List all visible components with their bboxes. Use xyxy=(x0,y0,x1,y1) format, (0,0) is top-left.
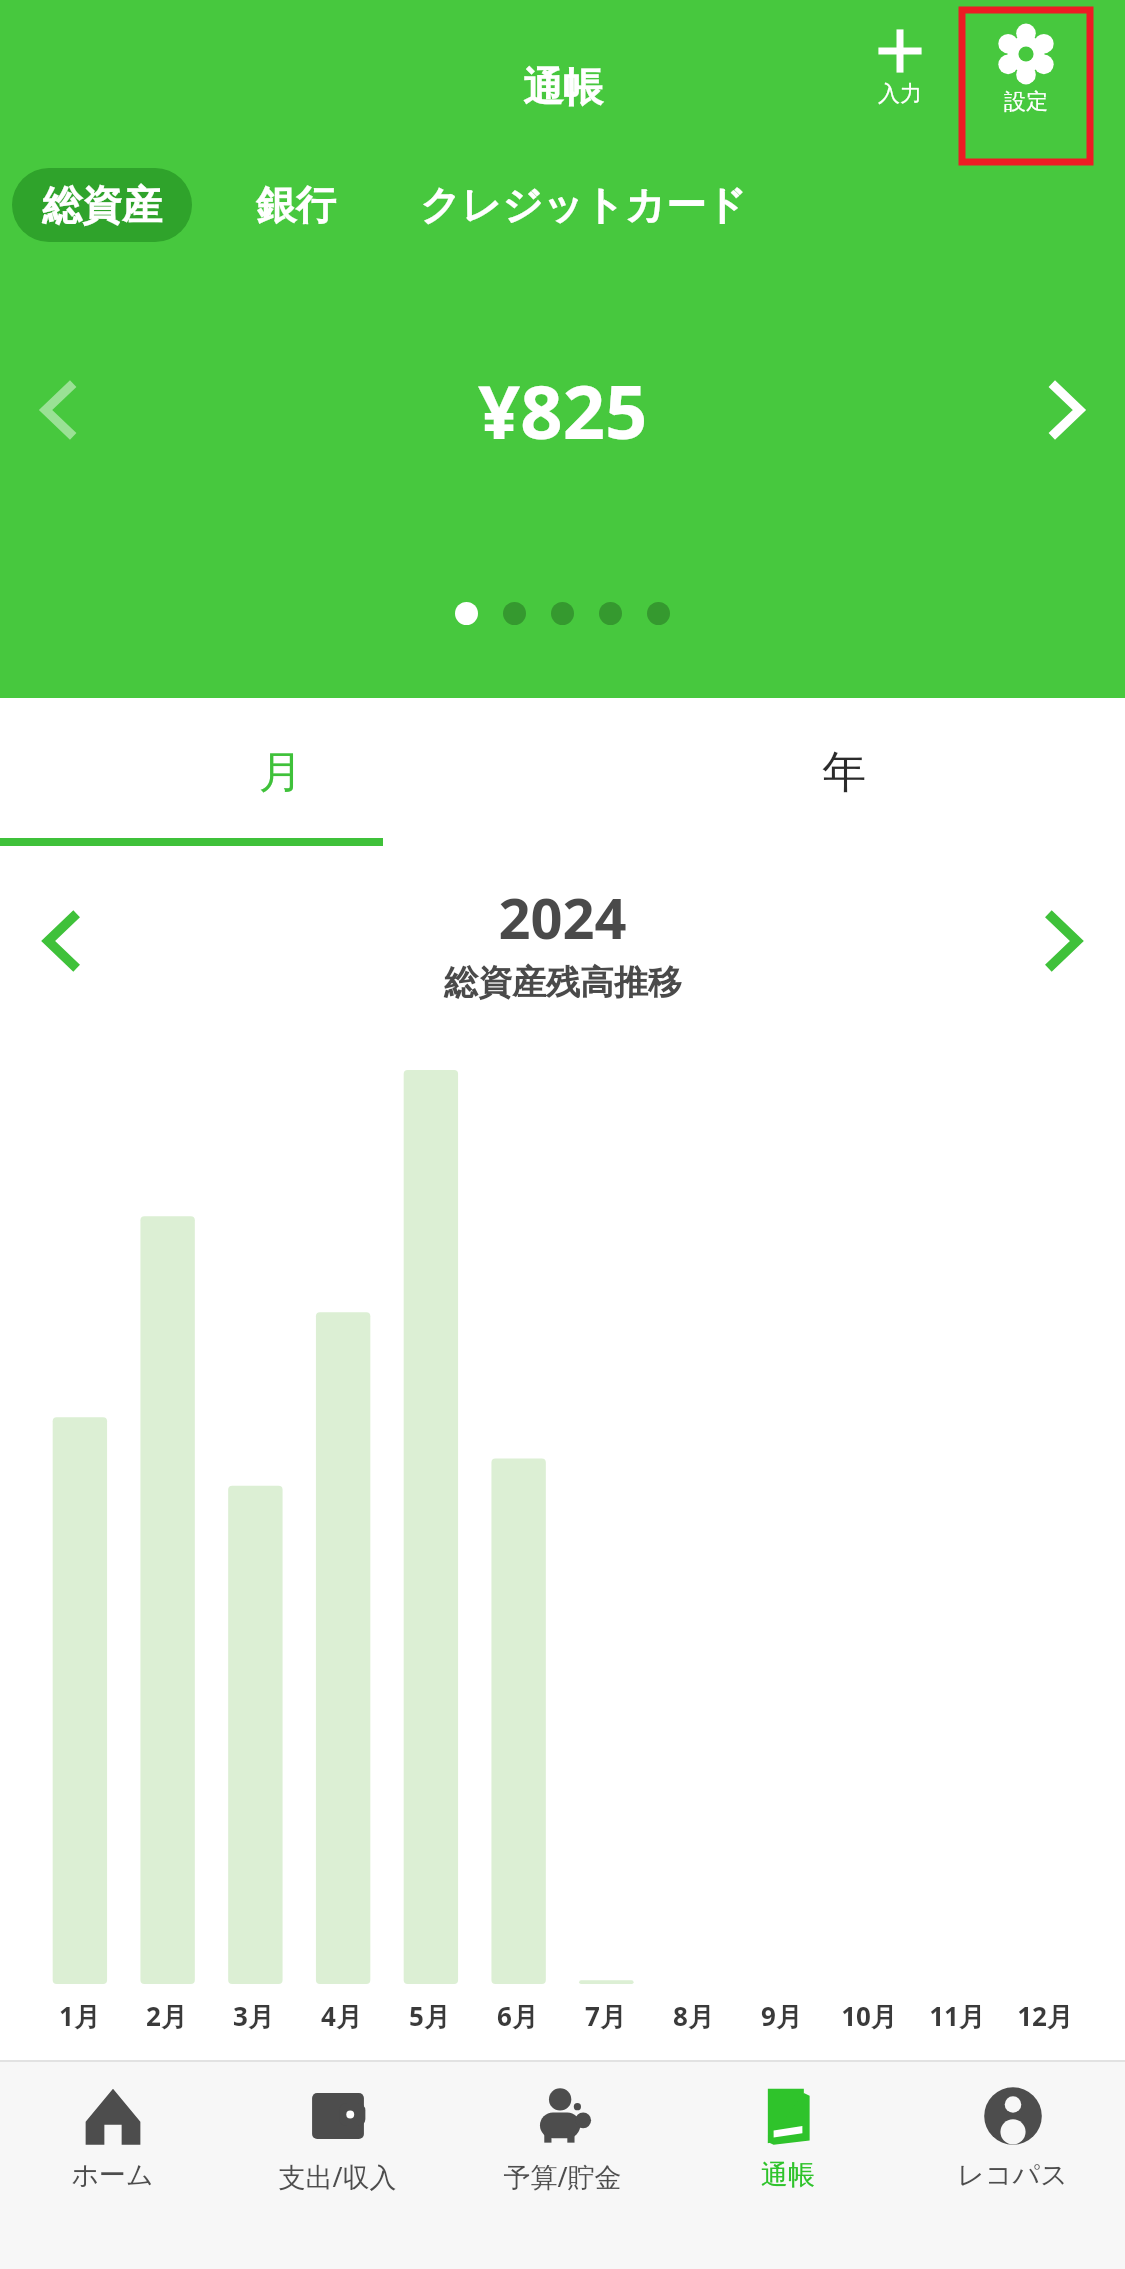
staticText: ホーム xyxy=(71,2158,154,2192)
staticText: 7月 xyxy=(585,1998,626,2034)
button[interactable]: ホーム xyxy=(0,2080,225,2269)
button[interactable]: レコパス xyxy=(900,2080,1125,2269)
staticText: 5月 xyxy=(409,1998,450,2034)
staticText: クレジットカード xyxy=(420,180,747,230)
button[interactable]: Previous year xyxy=(18,896,108,986)
staticText: 11月 xyxy=(929,1998,985,2034)
button[interactable]: 支出/収入 xyxy=(225,2080,450,2269)
staticText: 2月 xyxy=(146,1998,187,2034)
staticText: ¥825 xyxy=(478,360,648,461)
button[interactable]: 銀行 xyxy=(236,168,356,242)
button[interactable]: Previous xyxy=(20,370,100,450)
staticText: 8月 xyxy=(673,1998,714,2034)
button[interactable]: Next year xyxy=(1017,896,1107,986)
staticText: 9月 xyxy=(761,1998,802,2034)
button[interactable]: 年 xyxy=(562,698,1125,846)
button[interactable]: 予算/貯金 xyxy=(450,2080,675,2269)
staticText: 2024 xyxy=(498,879,627,955)
button[interactable]: 設定 xyxy=(962,10,1090,162)
staticText: 4月 xyxy=(321,1998,362,2034)
staticText: 年 xyxy=(822,745,866,800)
staticText: 3月 xyxy=(233,1998,274,2034)
button[interactable]: 総資産 xyxy=(12,168,192,242)
staticText: 総資産残高推移 xyxy=(444,961,682,1004)
button[interactable]: 月 xyxy=(0,698,562,846)
staticText: 通帳 xyxy=(523,62,603,112)
button[interactable]: 通帳 xyxy=(675,2080,900,2269)
staticText: 支出/収入 xyxy=(278,2158,397,2195)
staticText: 月 xyxy=(259,745,303,800)
staticText: 1月 xyxy=(59,1998,100,2034)
button[interactable]: 入力 xyxy=(845,18,955,114)
staticText: 10月 xyxy=(841,1998,897,2034)
staticText: 総資産 xyxy=(42,180,162,230)
staticText: 通帳 xyxy=(761,2158,815,2192)
button[interactable]: クレジットカード xyxy=(400,168,767,242)
staticText: 銀行 xyxy=(256,180,336,230)
staticText: 入力 xyxy=(878,80,922,108)
staticText: レコパス xyxy=(957,2158,1068,2192)
staticText: 設定 xyxy=(1004,88,1048,116)
staticText: 12月 xyxy=(1017,1998,1073,2034)
button[interactable]: Next xyxy=(1025,370,1105,450)
staticText: 予算/貯金 xyxy=(503,2158,622,2195)
staticText: 6月 xyxy=(497,1998,538,2034)
